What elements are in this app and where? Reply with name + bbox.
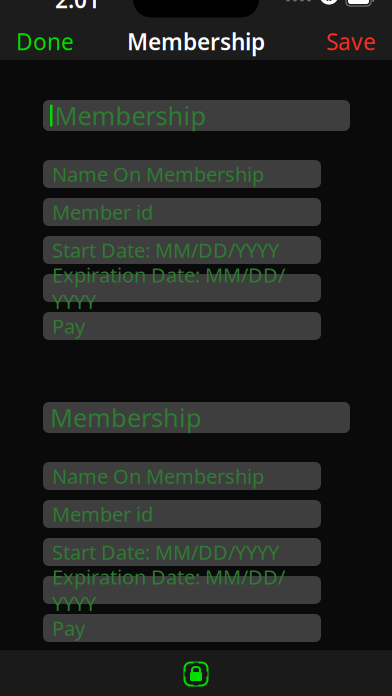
button[interactable]: Member id xyxy=(43,198,321,226)
button[interactable]: Name On Membership xyxy=(43,462,321,490)
button[interactable]: Member id xyxy=(43,500,321,528)
staticText: Pay xyxy=(52,615,85,641)
staticText: Start Date: MM/DD/YYYY xyxy=(52,237,279,263)
button[interactable]: Pay xyxy=(43,614,321,642)
staticText: Membership xyxy=(50,401,202,434)
staticText: Save xyxy=(326,26,376,56)
staticText: Pay xyxy=(52,313,85,339)
button[interactable]: Save xyxy=(310,19,392,63)
staticText: Member id xyxy=(52,199,153,225)
button[interactable]: Start Date: MM/DD/YYYY xyxy=(43,538,321,566)
staticText: 2:01 xyxy=(55,0,100,15)
staticText: Done xyxy=(16,26,74,56)
button[interactable]: Expiration Date: MM/DD/YYYY xyxy=(43,274,321,302)
staticText: Membership xyxy=(127,26,265,56)
button[interactable]: Secure autofill xyxy=(168,649,224,696)
staticText: Start Date: MM/DD/YYYY xyxy=(52,539,279,565)
staticText: Expiration Date: MM/DD/YYYY xyxy=(52,563,285,616)
staticText: Name On Membership xyxy=(52,161,264,187)
staticText: Name On Membership xyxy=(52,463,264,489)
staticText: Expiration Date: MM/DD/YYYY xyxy=(52,261,285,314)
button[interactable]: Name On Membership xyxy=(43,160,321,188)
button[interactable]: Expiration Date: MM/DD/YYYY xyxy=(43,576,321,604)
staticText: Membership xyxy=(54,99,206,132)
button[interactable]: Pay xyxy=(43,312,321,340)
button[interactable]: Membership xyxy=(43,402,350,433)
button[interactable]: Membership xyxy=(43,100,350,131)
button[interactable]: Done xyxy=(0,19,90,63)
button[interactable]: Start Date: MM/DD/YYYY xyxy=(43,236,321,264)
staticText: Member id xyxy=(52,501,153,527)
